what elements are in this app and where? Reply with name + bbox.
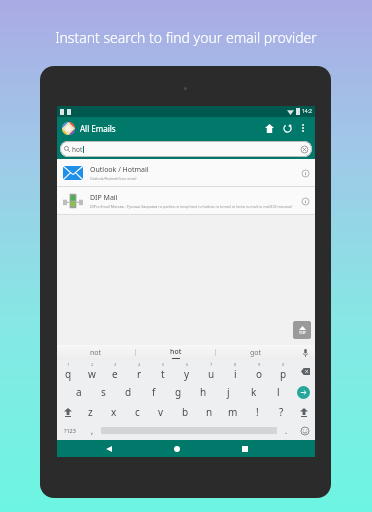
staticText: , [91, 425, 94, 436]
button[interactable]: g [166, 382, 191, 402]
button[interactable]: j [216, 382, 241, 402]
button[interactable]: Info [300, 168, 310, 178]
button[interactable]: s [91, 382, 116, 402]
button[interactable]: Home [155, 440, 198, 457]
button[interactable]: Emoji [295, 422, 315, 439]
button[interactable]: v [149, 402, 173, 422]
staticText: f [152, 385, 156, 399]
staticText: n [206, 405, 213, 419]
button[interactable]: DIP Mail [57, 187, 315, 214]
button[interactable]: Home [260, 119, 278, 137]
staticText: k [251, 385, 257, 399]
staticText: b [182, 405, 189, 419]
staticText: ? [279, 405, 284, 419]
staticText: not [90, 348, 102, 358]
staticText: j [227, 385, 230, 399]
staticText: 6 [186, 362, 189, 367]
staticText: g [175, 385, 182, 399]
button[interactable]: n [197, 402, 221, 422]
button[interactable]: 0 [271, 361, 295, 382]
button[interactable]: b [173, 402, 197, 422]
staticText: w [88, 367, 96, 381]
staticText: a [76, 385, 82, 399]
button[interactable]: Outlook / Hotmail [57, 159, 315, 186]
button[interactable]: 1 [57, 361, 80, 382]
staticText: d [125, 385, 132, 399]
staticText: x [111, 405, 117, 419]
button[interactable]: 7 [199, 361, 223, 382]
staticText: z [88, 405, 93, 419]
staticText: u [208, 367, 215, 381]
button[interactable]: z [79, 402, 102, 422]
button[interactable]: Scroll to top [293, 321, 311, 339]
button[interactable]: h [191, 382, 216, 402]
staticText: r [137, 367, 142, 381]
staticText: 9 [258, 362, 261, 367]
staticText: 8 [234, 362, 237, 367]
button[interactable]: ?123 [57, 422, 83, 439]
staticText: All Emails [80, 123, 116, 134]
staticText: ! [256, 405, 259, 419]
button[interactable]: Search [291, 382, 315, 402]
staticText: i [234, 367, 237, 381]
staticText: s [101, 385, 106, 399]
staticText: 0 [282, 362, 285, 367]
button[interactable]: k [241, 382, 266, 402]
button[interactable]: 6 [175, 361, 199, 382]
staticText: ?123 [64, 427, 76, 434]
button[interactable]: , [83, 422, 101, 439]
staticText: l [277, 385, 280, 399]
staticText: c [135, 405, 140, 419]
button[interactable]: 5 [151, 361, 175, 382]
button[interactable]: 4 [127, 361, 151, 382]
staticText: 1 [67, 362, 70, 367]
button[interactable]: a [67, 382, 91, 402]
staticText: . [285, 425, 288, 436]
staticText: m [228, 405, 238, 419]
button[interactable]: Refresh [278, 119, 296, 137]
button[interactable]: f [141, 382, 166, 402]
staticText: y [184, 367, 190, 381]
button[interactable]: hot [60, 141, 312, 157]
button[interactable]: 2 [80, 361, 103, 382]
button[interactable]: 8 [223, 361, 247, 382]
button[interactable]: 3 [103, 361, 127, 382]
staticText: got [250, 348, 262, 358]
button[interactable]: hot [136, 345, 215, 360]
staticText: q [65, 367, 72, 381]
button[interactable]: got [216, 345, 295, 360]
staticText: o [256, 367, 263, 381]
staticText: h [200, 385, 207, 399]
button[interactable]: . [277, 422, 295, 439]
button[interactable]: l [266, 382, 291, 402]
staticText: Instant search to find your email provid… [0, 28, 372, 47]
staticText: e [112, 367, 118, 381]
staticText: 4 [138, 362, 141, 367]
staticText: Outlook/Hotmail/Live email [90, 176, 137, 181]
button[interactable]: d [116, 382, 141, 402]
button[interactable]: Shift [293, 402, 315, 422]
staticText: 3 [114, 362, 117, 367]
button[interactable]: Voice input [295, 345, 315, 360]
button[interactable]: Back [87, 440, 130, 457]
staticText: 5 [162, 362, 165, 367]
button[interactable]: More options [296, 121, 310, 135]
button[interactable]: ? [269, 402, 293, 422]
button[interactable]: not [57, 345, 135, 360]
button[interactable]: Backspace [295, 361, 315, 382]
button[interactable]: c [125, 402, 149, 422]
button[interactable]: Clear search [300, 145, 308, 153]
button[interactable]: Shift [57, 402, 79, 422]
staticText: hot [72, 145, 83, 154]
button[interactable]: Info [300, 196, 310, 206]
staticText: TOP [299, 330, 306, 335]
staticText: DIPro Email Москва - Русская Заправка ru… [90, 204, 296, 209]
button[interactable]: m [221, 402, 245, 422]
staticText: p [280, 367, 287, 381]
button[interactable]: x [102, 402, 125, 422]
staticText: Outlook / Hotmail [90, 165, 149, 175]
button[interactable]: 9 [247, 361, 271, 382]
button[interactable]: ! [245, 402, 269, 422]
button[interactable]: Recent apps [223, 440, 266, 457]
